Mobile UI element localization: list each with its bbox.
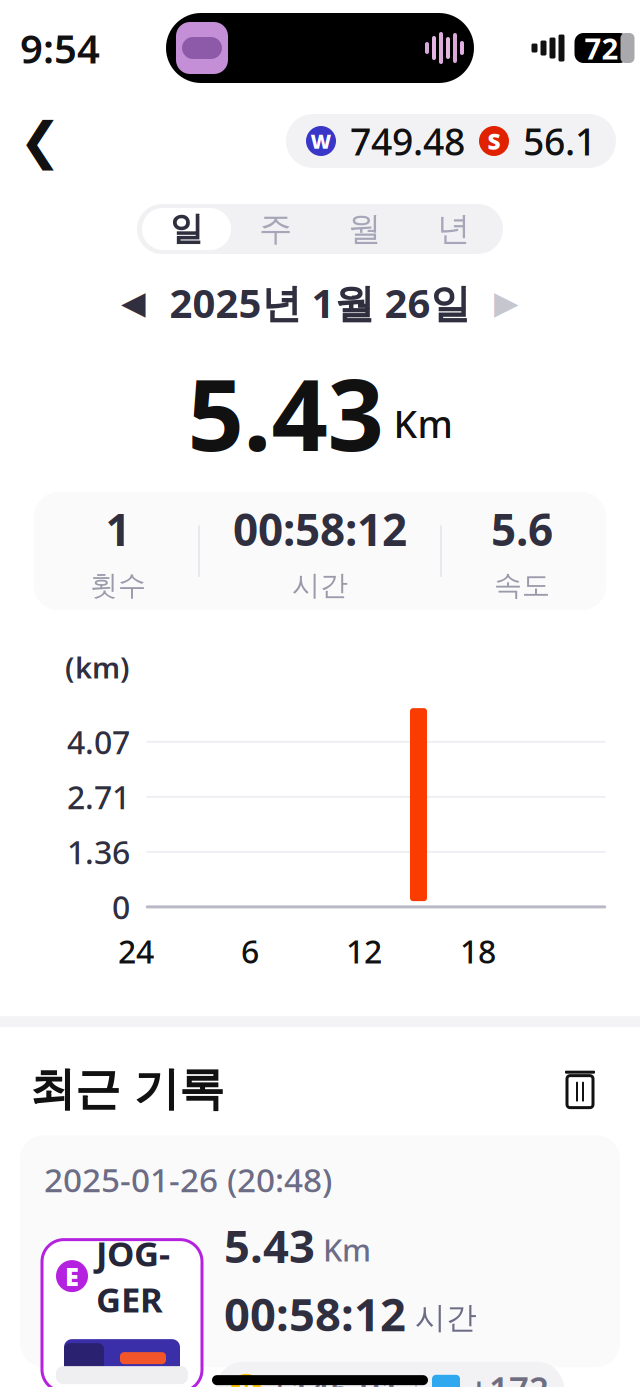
- staticText: Km: [383, 399, 452, 448]
- staticText: 최근 기록: [30, 1061, 224, 1117]
- staticText: ❮: [19, 112, 61, 170]
- button[interactable]: Previous day: [105, 280, 161, 326]
- staticText: 00:58:12: [224, 1284, 406, 1344]
- staticText: 시간: [406, 1299, 477, 1337]
- staticText: S: [487, 126, 500, 156]
- staticText: JOGGER: [96, 1230, 170, 1322]
- staticText: 9:54: [20, 21, 100, 74]
- staticText: 월: [348, 208, 381, 249]
- staticText: +172: [460, 1366, 549, 1387]
- staticText: 2.71: [67, 776, 130, 818]
- staticText: W: [310, 128, 331, 154]
- staticText: 5.6: [491, 500, 553, 558]
- button[interactable]: 2025-01-26 (20:48): [20, 1135, 620, 1367]
- staticText: 2025-01-26 (20:48): [44, 1157, 332, 1201]
- button[interactable]: 주: [231, 208, 320, 250]
- staticText: 72: [584, 28, 618, 67]
- staticText: 56.1: [523, 116, 596, 166]
- button[interactable]: W: [286, 114, 616, 168]
- button[interactable]: 일: [142, 208, 231, 250]
- staticText: 주: [259, 208, 292, 249]
- staticText: 5.43: [187, 347, 383, 478]
- staticText: +145.91: [261, 1366, 400, 1387]
- button[interactable]: 월: [320, 208, 409, 250]
- staticText: 749.48: [350, 116, 465, 166]
- button[interactable]: Back: [0, 106, 80, 176]
- staticText: 6: [241, 930, 259, 972]
- staticText: 년: [437, 208, 470, 249]
- button[interactable]: Next day: [478, 280, 534, 326]
- staticText: 1.36: [67, 831, 130, 873]
- staticText: P: [238, 1372, 254, 1387]
- staticText: ◀: [121, 284, 146, 321]
- staticText: ▶: [494, 284, 519, 321]
- staticText: E: [65, 1259, 79, 1293]
- staticText: 2025년 1월 26일: [169, 276, 470, 329]
- staticText: 24: [118, 930, 154, 972]
- staticText: 일: [170, 208, 203, 249]
- staticText: Km: [315, 1229, 371, 1270]
- staticText: 속도: [494, 568, 550, 603]
- button[interactable]: Delete records: [550, 1059, 610, 1119]
- staticText: 18: [460, 930, 496, 972]
- staticText: 4.07: [67, 721, 130, 763]
- staticText: 5.43: [224, 1215, 315, 1276]
- staticText: 12: [346, 930, 382, 972]
- staticText: 횟수: [90, 568, 146, 603]
- staticText: 00:58:12: [233, 500, 407, 558]
- staticText: 시간: [292, 568, 348, 603]
- staticText: 0: [112, 886, 130, 928]
- staticText: (km): [65, 648, 130, 687]
- button[interactable]: 년: [409, 208, 498, 250]
- staticText: 1: [105, 500, 130, 558]
